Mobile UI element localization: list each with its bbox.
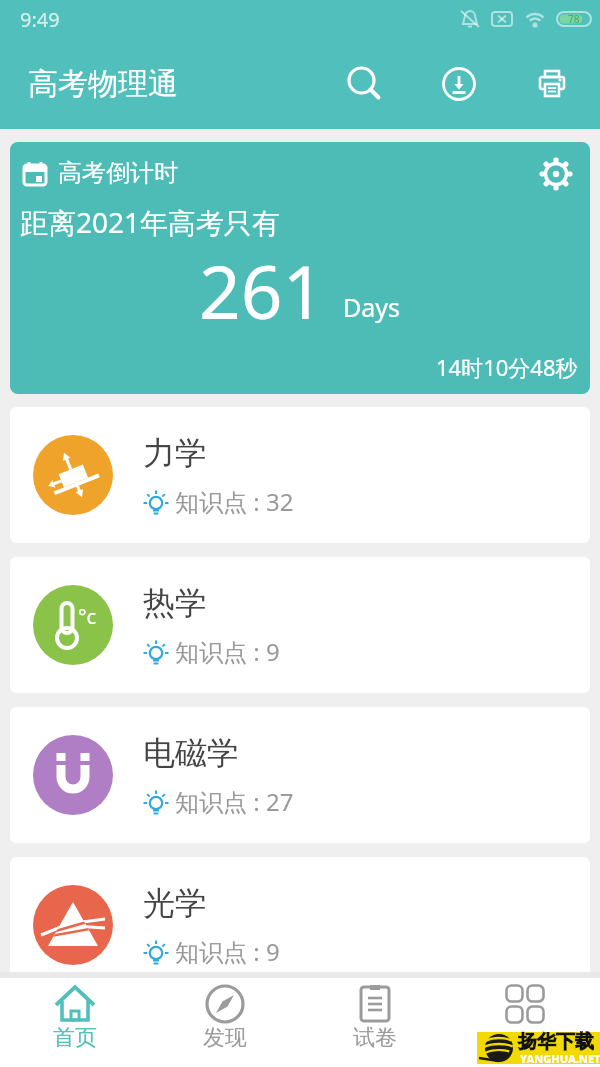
button[interactable] <box>517 49 587 119</box>
staticText: 知识点 : 9 <box>175 935 280 968</box>
staticText: 高考倒计时 <box>58 158 178 188</box>
staticText: °c <box>78 603 97 630</box>
staticText: 光学 <box>143 883 207 923</box>
button[interactable]: 力学 <box>10 407 590 543</box>
staticText: 14时10分48秒 <box>436 352 578 382</box>
staticText: 78 <box>568 12 580 26</box>
staticText: 试卷 <box>353 1024 397 1052</box>
staticText: 知识点 : 32 <box>175 485 294 518</box>
staticText: 距离2021年高考只有 <box>20 203 281 241</box>
button[interactable] <box>534 152 578 196</box>
staticText: 知识点 : 9 <box>175 635 280 668</box>
staticText: 发现 <box>203 1024 247 1052</box>
staticText: 扬华下载 <box>518 1030 594 1054</box>
button[interactable] <box>450 978 600 1067</box>
button[interactable]: 试卷 <box>300 978 450 1067</box>
staticText: Days <box>343 290 401 324</box>
button[interactable]: °c <box>10 557 590 693</box>
staticText: 电磁学 <box>143 733 239 773</box>
staticText: 9:49 <box>20 6 60 33</box>
staticText: 首页 <box>53 1024 97 1052</box>
staticText: YANGHUA.NET <box>520 1051 600 1066</box>
button[interactable]: 光学 <box>10 857 590 993</box>
staticText: 高考物理通 <box>28 65 178 103</box>
button[interactable]: 首页 <box>0 978 150 1067</box>
staticText: 力学 <box>143 433 207 473</box>
button[interactable] <box>330 49 400 119</box>
staticText: 知识点 : 27 <box>175 785 294 818</box>
staticText: 261 <box>199 241 325 340</box>
button[interactable]: 发现 <box>150 978 300 1067</box>
button[interactable]: 电磁学 <box>10 707 590 843</box>
staticText: 热学 <box>143 583 207 623</box>
button[interactable] <box>424 49 494 119</box>
